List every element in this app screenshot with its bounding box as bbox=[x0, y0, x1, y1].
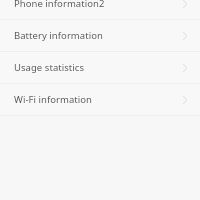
staticText: Battery information bbox=[14, 29, 103, 42]
other: Battery information bbox=[179, 30, 191, 42]
other: Usage statistics bbox=[179, 62, 191, 74]
staticText: Phone information2 bbox=[14, 0, 105, 10]
staticText: Wi-Fi information bbox=[14, 93, 93, 106]
other: Wi-Fi information bbox=[179, 94, 191, 106]
button[interactable]: Phone information2 bbox=[0, 0, 200, 19]
button[interactable]: Wi-Fi information bbox=[0, 84, 200, 115]
button[interactable]: Usage statistics bbox=[0, 52, 200, 83]
other: Phone information2 bbox=[179, 0, 191, 10]
button[interactable]: Battery information bbox=[0, 20, 200, 51]
staticText: Usage statistics bbox=[14, 61, 85, 74]
